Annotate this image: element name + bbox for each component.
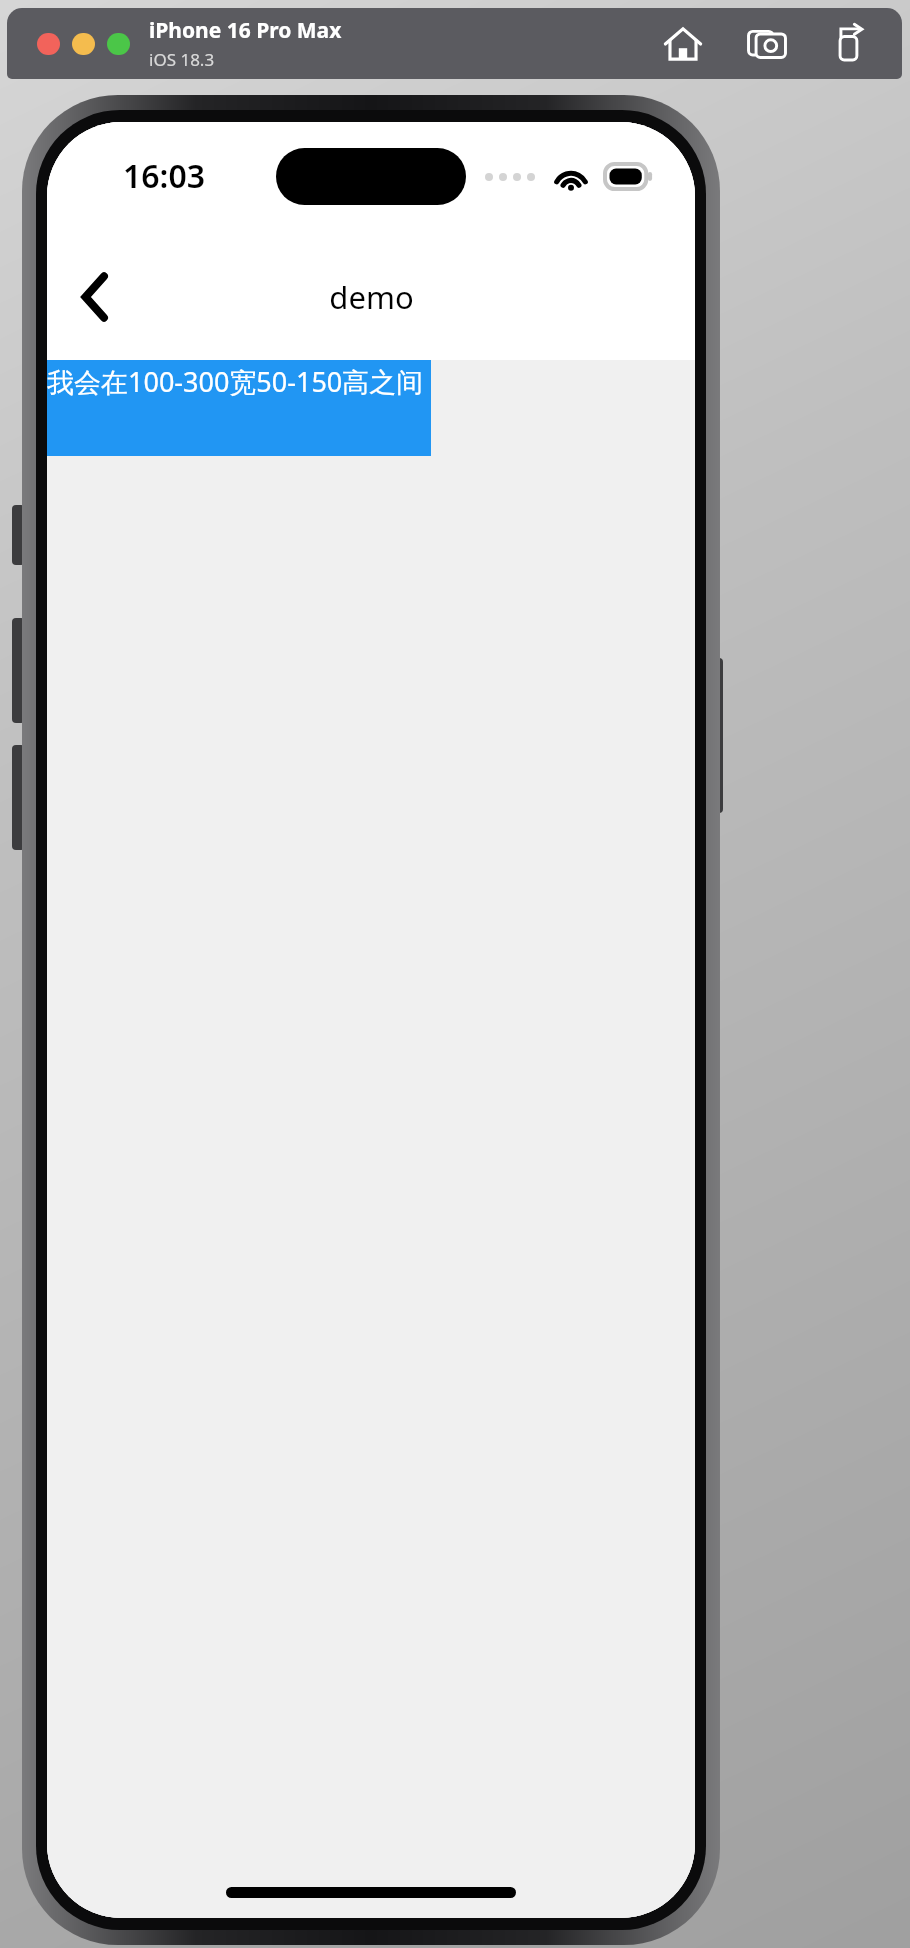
staticText: iPhone 16 Pro Max bbox=[149, 16, 342, 45]
staticText: 16:03 bbox=[123, 154, 206, 198]
staticText: 我会在100-300宽50-150高之间 bbox=[47, 363, 424, 400]
button[interactable]: Back bbox=[61, 263, 129, 331]
staticText: demo bbox=[329, 276, 414, 318]
button[interactable]: Screenshot bbox=[746, 23, 788, 65]
button[interactable]: Window button bbox=[107, 33, 130, 55]
button[interactable]: Rotate bbox=[830, 23, 872, 65]
button[interactable]: 我会在100-300宽50-150高之间 bbox=[47, 360, 431, 456]
button[interactable]: Window button bbox=[37, 33, 60, 55]
button[interactable]: Window button bbox=[72, 33, 95, 55]
staticText: iOS 18.3 bbox=[149, 48, 215, 71]
button[interactable]: Home bbox=[662, 23, 704, 65]
